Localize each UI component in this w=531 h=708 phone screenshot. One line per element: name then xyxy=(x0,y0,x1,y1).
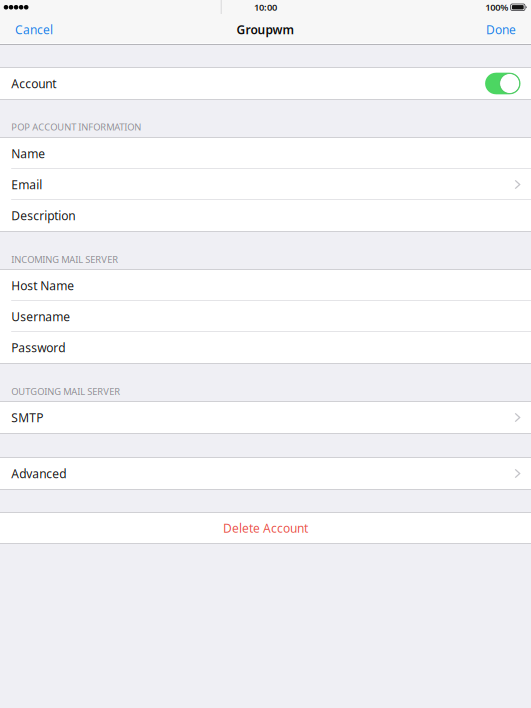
button[interactable]: Name xyxy=(0,138,531,169)
button[interactable]: Done xyxy=(476,15,531,44)
staticText: OUTGOING MAIL SERVER xyxy=(11,385,120,398)
staticText: Host Name xyxy=(11,277,74,293)
button[interactable]: Cancel xyxy=(0,15,63,44)
staticText: POP ACCOUNT INFORMATION xyxy=(11,121,141,133)
button[interactable]: SMTP xyxy=(0,402,531,433)
button[interactable]: Advanced xyxy=(0,458,531,489)
staticText: Username xyxy=(11,308,70,324)
staticText: Password xyxy=(11,339,65,355)
button[interactable]: Account enabled xyxy=(485,73,520,94)
staticText: Groupwm xyxy=(236,21,294,37)
staticText: Advanced xyxy=(11,465,66,481)
staticText: Delete Account xyxy=(223,520,308,536)
staticText: Name xyxy=(11,145,45,161)
staticText: 10:00 xyxy=(254,1,277,13)
button[interactable]: Delete Account xyxy=(0,513,531,543)
staticText: Account xyxy=(11,75,56,91)
staticText: Cancel xyxy=(15,21,53,37)
staticText: Description xyxy=(11,207,75,223)
staticText: INCOMING MAIL SERVER xyxy=(11,253,118,266)
button[interactable]: Username xyxy=(0,301,531,332)
staticText: Email xyxy=(11,176,42,192)
staticText: SMTP xyxy=(11,409,43,425)
button[interactable]: Description xyxy=(0,200,531,231)
button[interactable]: Password xyxy=(0,332,531,363)
button[interactable]: Email xyxy=(0,169,531,200)
staticText: Done xyxy=(486,21,516,37)
button[interactable]: Host Name xyxy=(0,270,531,301)
staticText: 100% xyxy=(485,1,508,13)
